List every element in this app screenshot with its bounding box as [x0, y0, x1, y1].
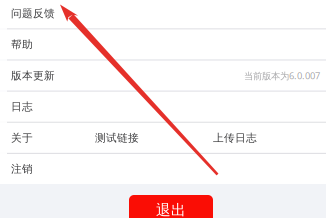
button[interactable]: 版本更新: [0, 61, 326, 91]
button[interactable]: 注销: [0, 154, 326, 184]
staticText: 日志: [11, 100, 33, 113]
button[interactable]: 上传日志: [213, 131, 257, 144]
button[interactable]: 日志: [0, 92, 326, 122]
button[interactable]: 测试链接: [95, 131, 139, 144]
staticText: 退出: [156, 201, 186, 218]
staticText: 关于: [11, 131, 33, 144]
button[interactable]: 问题反馈: [0, 0, 326, 28]
staticText: 上传日志: [213, 131, 257, 144]
button[interactable]: 帮助: [0, 29, 326, 60]
staticText: 问题反馈: [11, 7, 55, 20]
staticText: 帮助: [11, 38, 33, 51]
staticText: 版本更新: [11, 69, 55, 82]
button[interactable]: 退出: [129, 195, 213, 218]
staticText: 注销: [11, 162, 33, 175]
staticText: 测试链接: [95, 131, 139, 144]
staticText: 当前版本为6.0.007: [244, 69, 320, 82]
